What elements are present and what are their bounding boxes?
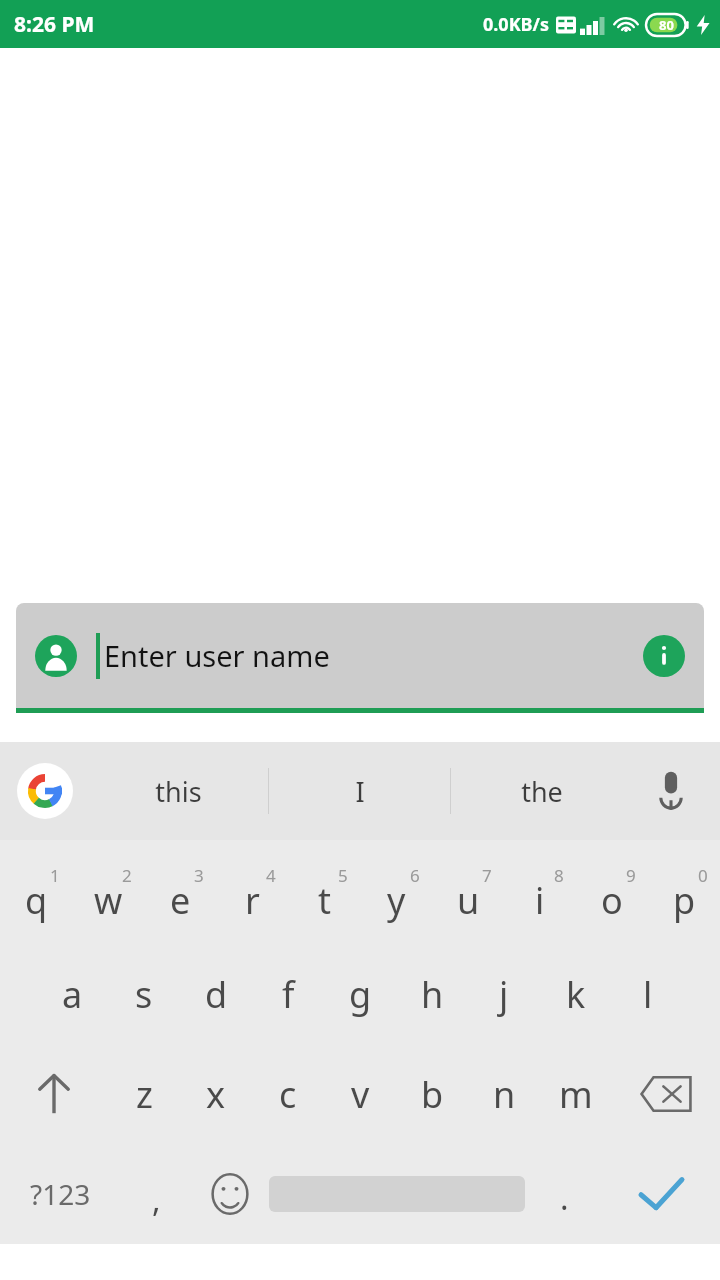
staticText: I — [355, 773, 365, 810]
staticText: u — [457, 876, 480, 925]
staticText: the — [521, 773, 563, 810]
staticText: 9 — [626, 864, 636, 887]
staticText: v — [351, 1070, 370, 1119]
staticText: s — [135, 970, 153, 1019]
staticText: k — [566, 970, 586, 1019]
staticText: 7 — [482, 864, 492, 887]
staticText: 4 — [266, 864, 276, 887]
button[interactable]: Voice input — [632, 756, 710, 826]
button[interactable]: this — [88, 756, 268, 826]
button[interactable]: User account — [34, 634, 78, 678]
button[interactable]: . — [528, 1144, 601, 1244]
staticText: f — [282, 970, 295, 1019]
staticText: this — [155, 773, 202, 810]
staticText: 1 — [50, 864, 60, 887]
staticText: i — [535, 876, 545, 925]
button[interactable]: Backspace — [612, 1044, 720, 1144]
staticText: 2 — [122, 864, 132, 887]
button[interactable]: v — [324, 1044, 396, 1144]
staticText: a — [62, 970, 83, 1019]
staticText: . — [560, 1176, 569, 1220]
staticText: 3 — [194, 864, 204, 887]
staticText: , — [152, 1178, 161, 1222]
button[interactable]: n — [468, 1044, 540, 1144]
staticText: n — [493, 1070, 516, 1119]
button[interactable]: y — [360, 856, 432, 944]
staticText: m — [559, 1070, 593, 1119]
button[interactable]: p — [648, 856, 720, 944]
button[interactable]: e — [144, 856, 216, 944]
staticText: h — [421, 970, 444, 1019]
button[interactable]: h — [396, 944, 468, 1044]
staticText: 6 — [410, 864, 420, 887]
staticText: e — [170, 876, 191, 925]
button[interactable]: i — [504, 856, 576, 944]
staticText: r — [245, 876, 260, 925]
staticText: b — [421, 1070, 444, 1119]
button[interactable]: a — [36, 944, 108, 1044]
button[interactable]: Emoji — [193, 1144, 266, 1244]
staticText: 5 — [338, 864, 348, 887]
button[interactable]: j — [468, 944, 540, 1044]
button[interactable]: u — [432, 856, 504, 944]
button[interactable]: r — [216, 856, 288, 944]
button[interactable]: s — [108, 944, 180, 1044]
staticText: x — [206, 1070, 226, 1119]
button[interactable]: l — [612, 944, 684, 1044]
staticText: y — [387, 876, 406, 925]
button[interactable]: Shift — [0, 1044, 108, 1144]
button[interactable]: d — [180, 944, 252, 1044]
staticText: Enter user name — [104, 636, 642, 675]
button[interactable]: I — [269, 756, 450, 826]
staticText: g — [349, 970, 372, 1019]
button[interactable]: User account — [16, 603, 704, 708]
button[interactable]: m — [540, 1044, 612, 1144]
button[interactable]: z — [108, 1044, 180, 1144]
button[interactable]: , — [120, 1144, 193, 1244]
button[interactable]: k — [540, 944, 612, 1044]
button[interactable]: Google — [16, 762, 74, 820]
staticText: 8:26 PM — [14, 10, 95, 39]
staticText: l — [643, 970, 653, 1019]
staticText: d — [205, 970, 228, 1019]
staticText: 80 — [659, 16, 674, 34]
button[interactable]: q — [0, 856, 72, 944]
button[interactable]: Enter — [601, 1144, 720, 1244]
staticText: q — [25, 876, 48, 925]
button[interactable]: Information — [642, 634, 686, 678]
button[interactable]: ?123 — [0, 1144, 120, 1244]
button[interactable]: w — [72, 856, 144, 944]
button[interactable]: c — [252, 1044, 324, 1144]
staticText: t — [318, 876, 331, 925]
staticText: 8 — [554, 864, 564, 887]
staticText: j — [499, 970, 509, 1019]
staticText: ?123 — [30, 1175, 91, 1213]
staticText: p — [673, 876, 696, 925]
staticText: z — [136, 1070, 153, 1119]
staticText: 0 — [698, 864, 708, 887]
button[interactable]: t — [288, 856, 360, 944]
button[interactable]: the — [451, 756, 632, 826]
button[interactable]: b — [396, 1044, 468, 1144]
button[interactable]: f — [252, 944, 324, 1044]
button[interactable]: g — [324, 944, 396, 1044]
button[interactable]: o — [576, 856, 648, 944]
staticText: 0.0KB/s — [483, 12, 550, 37]
button[interactable]: x — [180, 1044, 252, 1144]
staticText: w — [94, 876, 123, 925]
staticText: o — [601, 876, 623, 925]
staticText: c — [279, 1070, 297, 1119]
